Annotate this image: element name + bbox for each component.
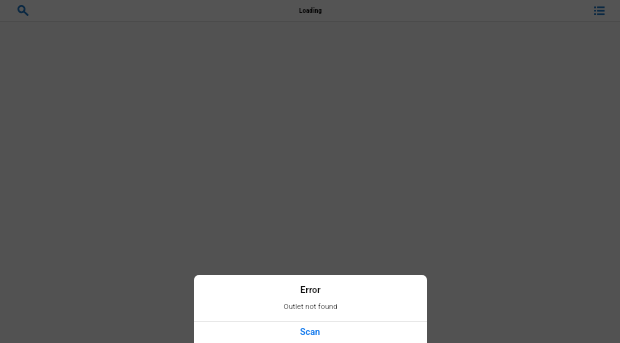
staticText: Scan: [300, 327, 321, 338]
staticText: Error: [194, 284, 427, 295]
button[interactable]: Menu: [592, 0, 613, 21]
button[interactable]: Search: [11, 0, 32, 21]
staticText: Loading: [299, 6, 322, 14]
staticText: Outlet not found: [194, 302, 427, 311]
button[interactable]: Scan: [194, 322, 427, 343]
